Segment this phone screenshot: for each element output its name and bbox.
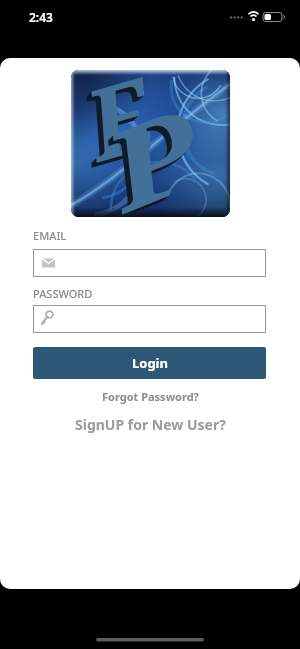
staticText: EMAIL (33, 228, 67, 243)
staticText: E (71, 70, 164, 192)
button[interactable]: E (71, 70, 230, 217)
staticText: SignUP for New User? (75, 415, 226, 434)
staticText: PASSWORD (33, 286, 93, 301)
staticText: P (82, 72, 224, 217)
staticText: P (79, 75, 221, 217)
staticText: P (78, 76, 220, 217)
staticText: P (81, 73, 223, 217)
button[interactable]: Forgot Password? (0, 389, 300, 404)
staticText: P (77, 77, 219, 217)
button[interactable] (33, 249, 266, 277)
staticText: E (71, 70, 165, 191)
staticText: P (80, 74, 222, 217)
staticText: Login (132, 354, 168, 372)
staticText: E (71, 70, 167, 189)
staticText: 2:43 (29, 9, 53, 25)
staticText: E (71, 70, 163, 193)
button[interactable]: Login (33, 347, 266, 379)
button[interactable]: SignUP for New User? (0, 415, 300, 434)
button[interactable] (33, 305, 266, 333)
staticText: Forgot Password? (102, 389, 199, 404)
staticText: E (71, 70, 162, 194)
staticText: E (71, 70, 166, 190)
